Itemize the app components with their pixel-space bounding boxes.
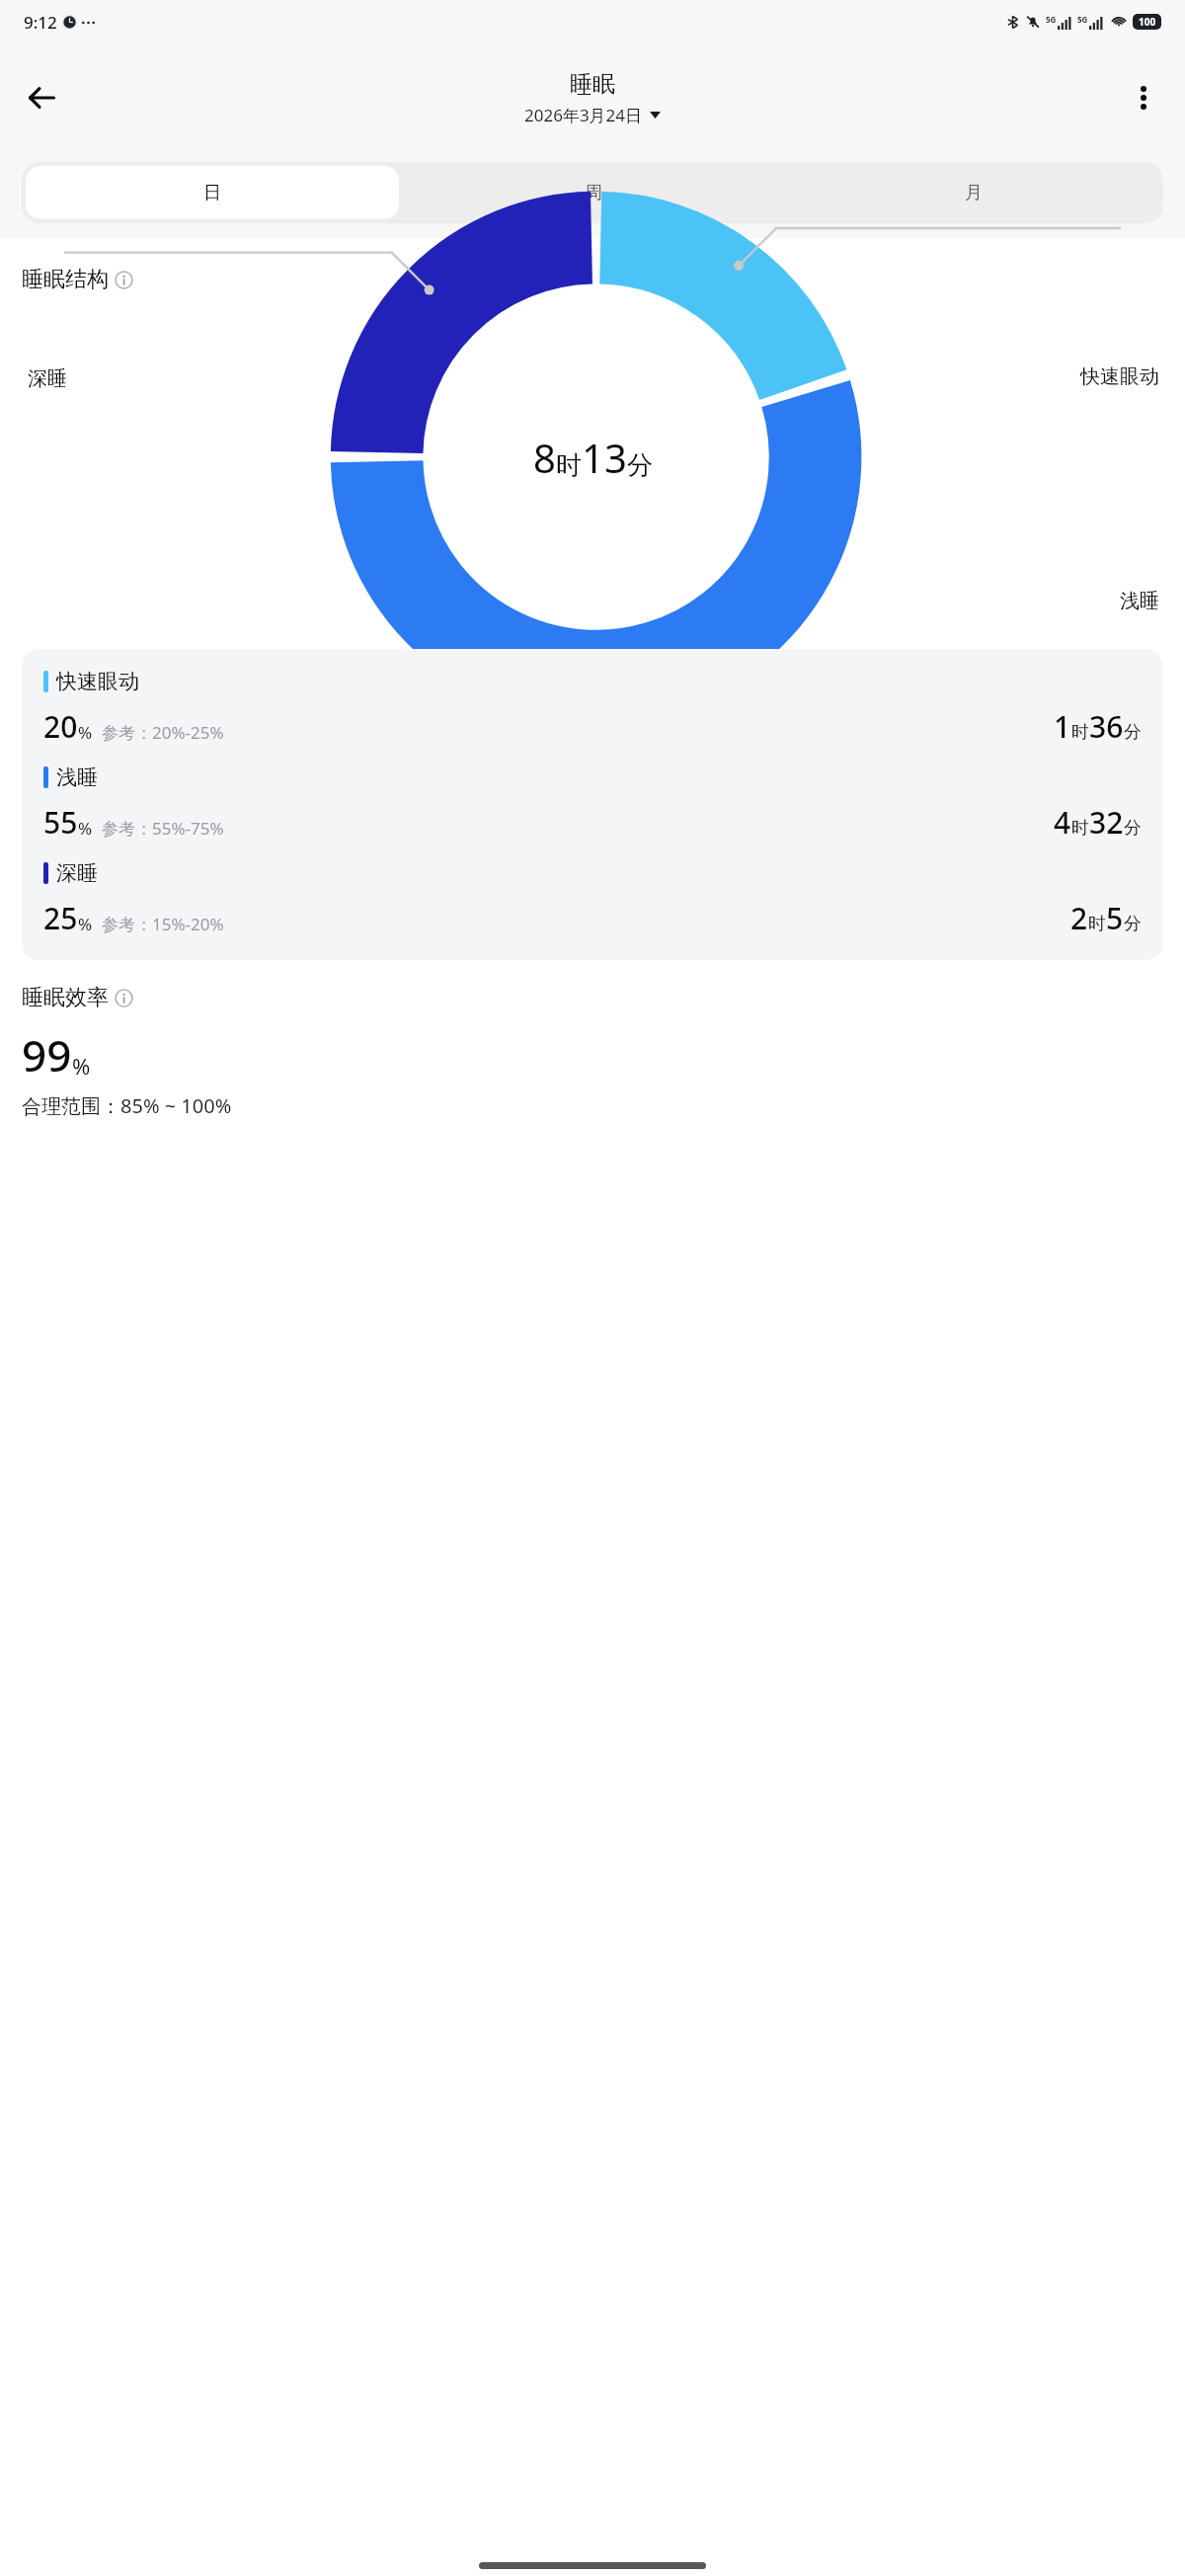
button[interactable]: 快速眼动 bbox=[43, 669, 1142, 747]
staticText: 32 bbox=[1089, 802, 1124, 843]
staticText: 浅睡 bbox=[56, 765, 98, 790]
staticText: 1 bbox=[1054, 706, 1071, 747]
staticText: 参考：20%-25% bbox=[102, 721, 224, 744]
staticText: 参考：15%-20% bbox=[102, 913, 224, 935]
staticText: 深睡 bbox=[56, 860, 98, 886]
staticText: 36 bbox=[1089, 706, 1124, 747]
staticText: 睡眠效率 bbox=[22, 984, 109, 1011]
staticText: 合理范围：85% ~ 100% bbox=[22, 1092, 232, 1119]
button[interactable]: Back bbox=[14, 70, 69, 125]
staticText: 月 bbox=[965, 182, 983, 204]
staticText: 13 bbox=[582, 431, 627, 484]
staticText: 时 bbox=[1088, 913, 1106, 935]
staticText: 深睡 bbox=[28, 366, 67, 391]
staticText: 时 bbox=[1071, 721, 1089, 744]
button[interactable]: 周 bbox=[407, 166, 779, 219]
button[interactable]: 睡眠 bbox=[524, 70, 661, 126]
staticText: 睡眠 bbox=[570, 70, 615, 99]
staticText: 睡眠结构 bbox=[22, 266, 109, 293]
staticText: 25 bbox=[43, 898, 78, 938]
staticText: 5 bbox=[1106, 898, 1124, 938]
staticText: 5G bbox=[1046, 14, 1057, 25]
staticText: 5G bbox=[1077, 14, 1088, 25]
staticText: 分 bbox=[1124, 913, 1142, 935]
staticText: 分 bbox=[627, 449, 653, 482]
staticText: 8 bbox=[533, 431, 556, 484]
staticText: 55 bbox=[43, 802, 78, 843]
button[interactable]: 深睡 bbox=[43, 860, 1142, 938]
button[interactable]: 浅睡 bbox=[43, 765, 1142, 843]
staticText: 2026年3月24日 bbox=[524, 104, 643, 126]
staticText: % bbox=[72, 1051, 91, 1081]
button[interactable]: 睡眠结构 bbox=[22, 266, 1185, 293]
staticText: 4 bbox=[1054, 802, 1071, 843]
staticText: 参考：55%-75% bbox=[102, 817, 224, 840]
staticText: 周 bbox=[585, 182, 602, 204]
staticText: 2 bbox=[1070, 898, 1088, 938]
staticText: 浅睡 bbox=[1120, 589, 1159, 613]
staticText: 9:12 bbox=[24, 11, 57, 34]
staticText: % bbox=[78, 913, 93, 935]
staticText: 99 bbox=[22, 1025, 72, 1085]
staticText: 日 bbox=[203, 182, 221, 204]
staticText: 分 bbox=[1124, 817, 1142, 840]
staticText: % bbox=[78, 817, 93, 840]
staticText: 分 bbox=[1124, 721, 1142, 744]
button[interactable]: 睡眠效率 bbox=[22, 984, 1185, 1011]
button[interactable]: 日 bbox=[26, 166, 399, 219]
staticText: 时 bbox=[556, 449, 582, 482]
button[interactable]: 月 bbox=[787, 166, 1159, 219]
staticText: % bbox=[78, 721, 93, 744]
button[interactable]: More options bbox=[1116, 70, 1171, 125]
staticText: 100 bbox=[1139, 15, 1156, 29]
staticText: 20 bbox=[43, 706, 78, 747]
staticText: 快速眼动 bbox=[1080, 364, 1159, 389]
staticText: 快速眼动 bbox=[56, 669, 139, 694]
staticText: 时 bbox=[1071, 817, 1089, 840]
